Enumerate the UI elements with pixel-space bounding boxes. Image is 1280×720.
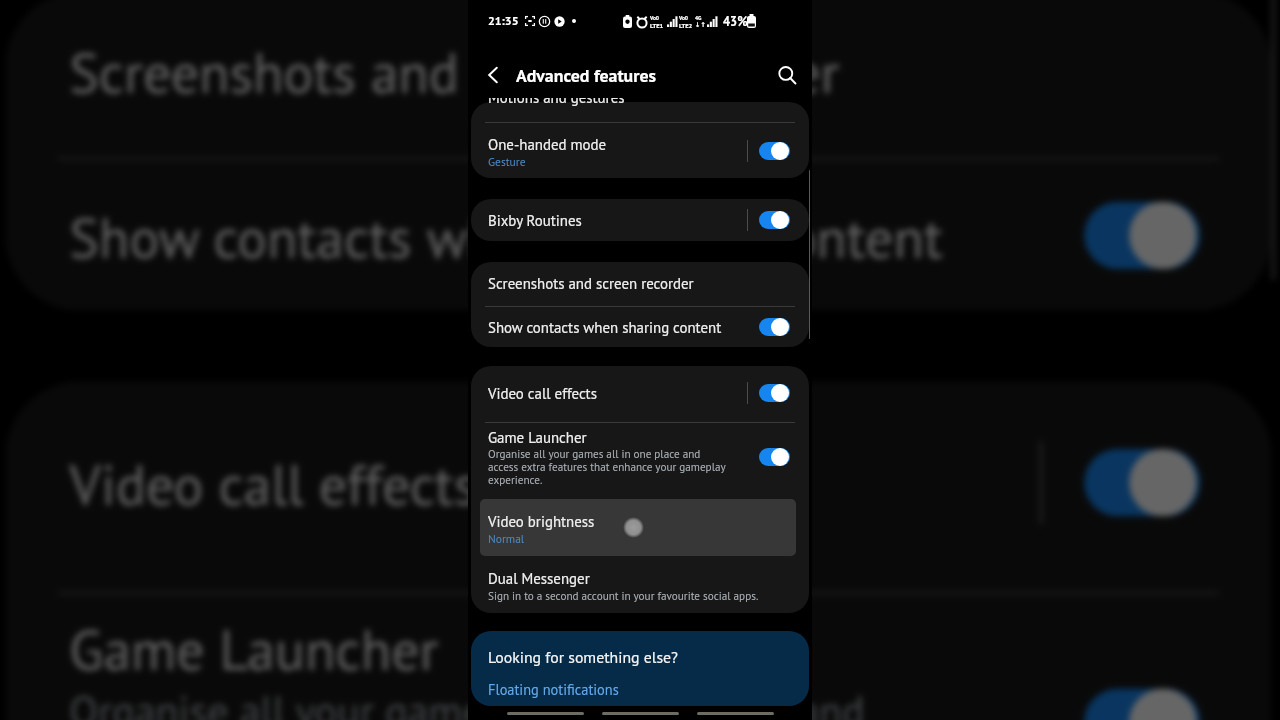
button[interactable]: One-handed mode — [471, 102, 809, 178]
staticText: Game Launcher — [69, 614, 440, 685]
button[interactable]: Video call effects — [6, 381, 1271, 587]
button[interactable]: Back — [470, 52, 516, 98]
button[interactable]: Toggle — [1065, 187, 1215, 284]
button[interactable]: Toggle — [1065, 434, 1215, 531]
staticText: LTE2 — [679, 21, 693, 29]
staticText: 21:35 — [488, 13, 519, 29]
button[interactable]: Screenshots and screen recorder — [471, 262, 809, 305]
staticText: Vo0 — [679, 14, 688, 21]
staticText: Organise all your games all in one place… — [488, 447, 726, 487]
button[interactable]: Bixby Routines — [471, 199, 809, 241]
staticText: 4G — [695, 14, 702, 21]
button[interactable]: Dual Messenger — [471, 561, 809, 612]
staticText: Show contacts when sharing content — [488, 318, 722, 337]
staticText: Bixby Routines — [488, 211, 582, 230]
staticText: ↓↑ — [695, 21, 706, 29]
staticText: Screenshots and screen recorder — [69, 37, 841, 108]
staticText: Floating notifications — [488, 680, 619, 699]
button[interactable]: Toggle — [754, 314, 794, 340]
button[interactable]: Video call effects — [471, 366, 809, 421]
button[interactable]: Toggle — [1065, 674, 1215, 720]
button[interactable]: Search — [764, 52, 810, 98]
staticText: Gesture — [488, 154, 526, 169]
button[interactable]: Show contacts when sharing content — [471, 306, 809, 347]
staticText: Show contacts when sharing content — [69, 202, 946, 273]
staticText: Game Launcher — [488, 428, 587, 447]
button[interactable]: Toggle — [754, 380, 794, 406]
staticText: Video call effects — [69, 449, 477, 520]
button[interactable]: Toggle — [754, 138, 794, 164]
button[interactable]: Screenshots and screen recorder — [6, 0, 1271, 153]
staticText: Normal — [488, 531, 525, 546]
staticText: One-handed mode — [488, 135, 607, 154]
button[interactable]: Game Launcher — [6, 595, 1271, 720]
staticText: Motions and gestures — [488, 88, 625, 107]
button[interactable]: Toggle — [754, 444, 794, 470]
staticText: 43% — [723, 13, 748, 29]
button[interactable]: Show contacts when sharing content — [6, 157, 1271, 310]
button[interactable]: Looking for something else? — [471, 631, 809, 706]
staticText: Video brightness — [488, 512, 595, 531]
staticText: LTE1 — [650, 21, 664, 29]
staticText: Organise all your games all in one place… — [69, 685, 961, 720]
staticText: Screenshots and screen recorder — [488, 274, 694, 293]
button[interactable]: Toggle — [754, 207, 794, 233]
staticText: Dual Messenger — [488, 569, 590, 588]
button[interactable]: Video brightness — [480, 499, 796, 556]
staticText: Advanced features — [516, 64, 656, 87]
staticText: Sign in to a second account in your favo… — [488, 589, 759, 603]
button[interactable]: Game Launcher — [471, 423, 809, 499]
staticText: Video call effects — [488, 384, 597, 403]
staticText: Looking for something else? — [488, 647, 678, 667]
staticText: Vo0 — [650, 14, 659, 21]
